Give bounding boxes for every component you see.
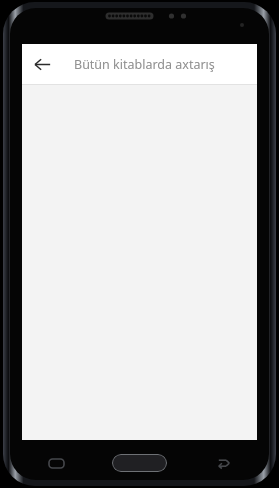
staticText: Bütün kitablarda axtarış xyxy=(74,56,215,73)
button[interactable]: Back xyxy=(22,44,62,84)
button[interactable]: Home xyxy=(112,454,167,472)
button[interactable]: Recent apps xyxy=(0,450,112,476)
button[interactable]: Back xyxy=(167,450,279,476)
